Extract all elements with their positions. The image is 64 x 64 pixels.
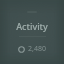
staticText: 2,480	[28, 44, 46, 54]
button[interactable]: Steps	[10, 43, 54, 55]
button[interactable]: Activity	[10, 20, 54, 32]
other: Steps	[18, 46, 25, 53]
